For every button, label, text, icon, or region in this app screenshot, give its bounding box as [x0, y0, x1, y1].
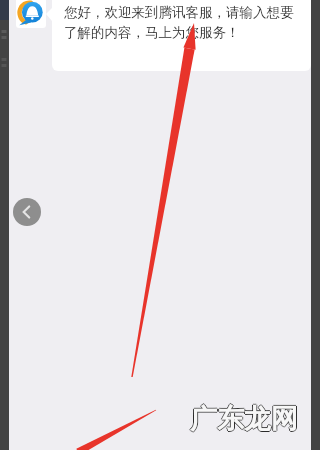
staticText: 您好，欢迎来到腾讯客服，请输入想要了解的内容，马上为您服务！ — [64, 4, 301, 41]
button[interactable]: 您好，欢迎来到腾讯客服，请输入想要了解的内容，马上为您服务！ — [52, 0, 311, 71]
button[interactable]: Customer service avatar — [16, 0, 46, 28]
button[interactable]: Back — [13, 198, 41, 226]
staticText: 广东龙网 — [190, 401, 298, 435]
staticText: 广东龙网 — [191, 402, 299, 436]
staticText: 广东龙网 — [190, 403, 298, 437]
staticText: 广东龙网 — [190, 402, 298, 436]
staticText: 广东龙网 — [189, 402, 297, 436]
